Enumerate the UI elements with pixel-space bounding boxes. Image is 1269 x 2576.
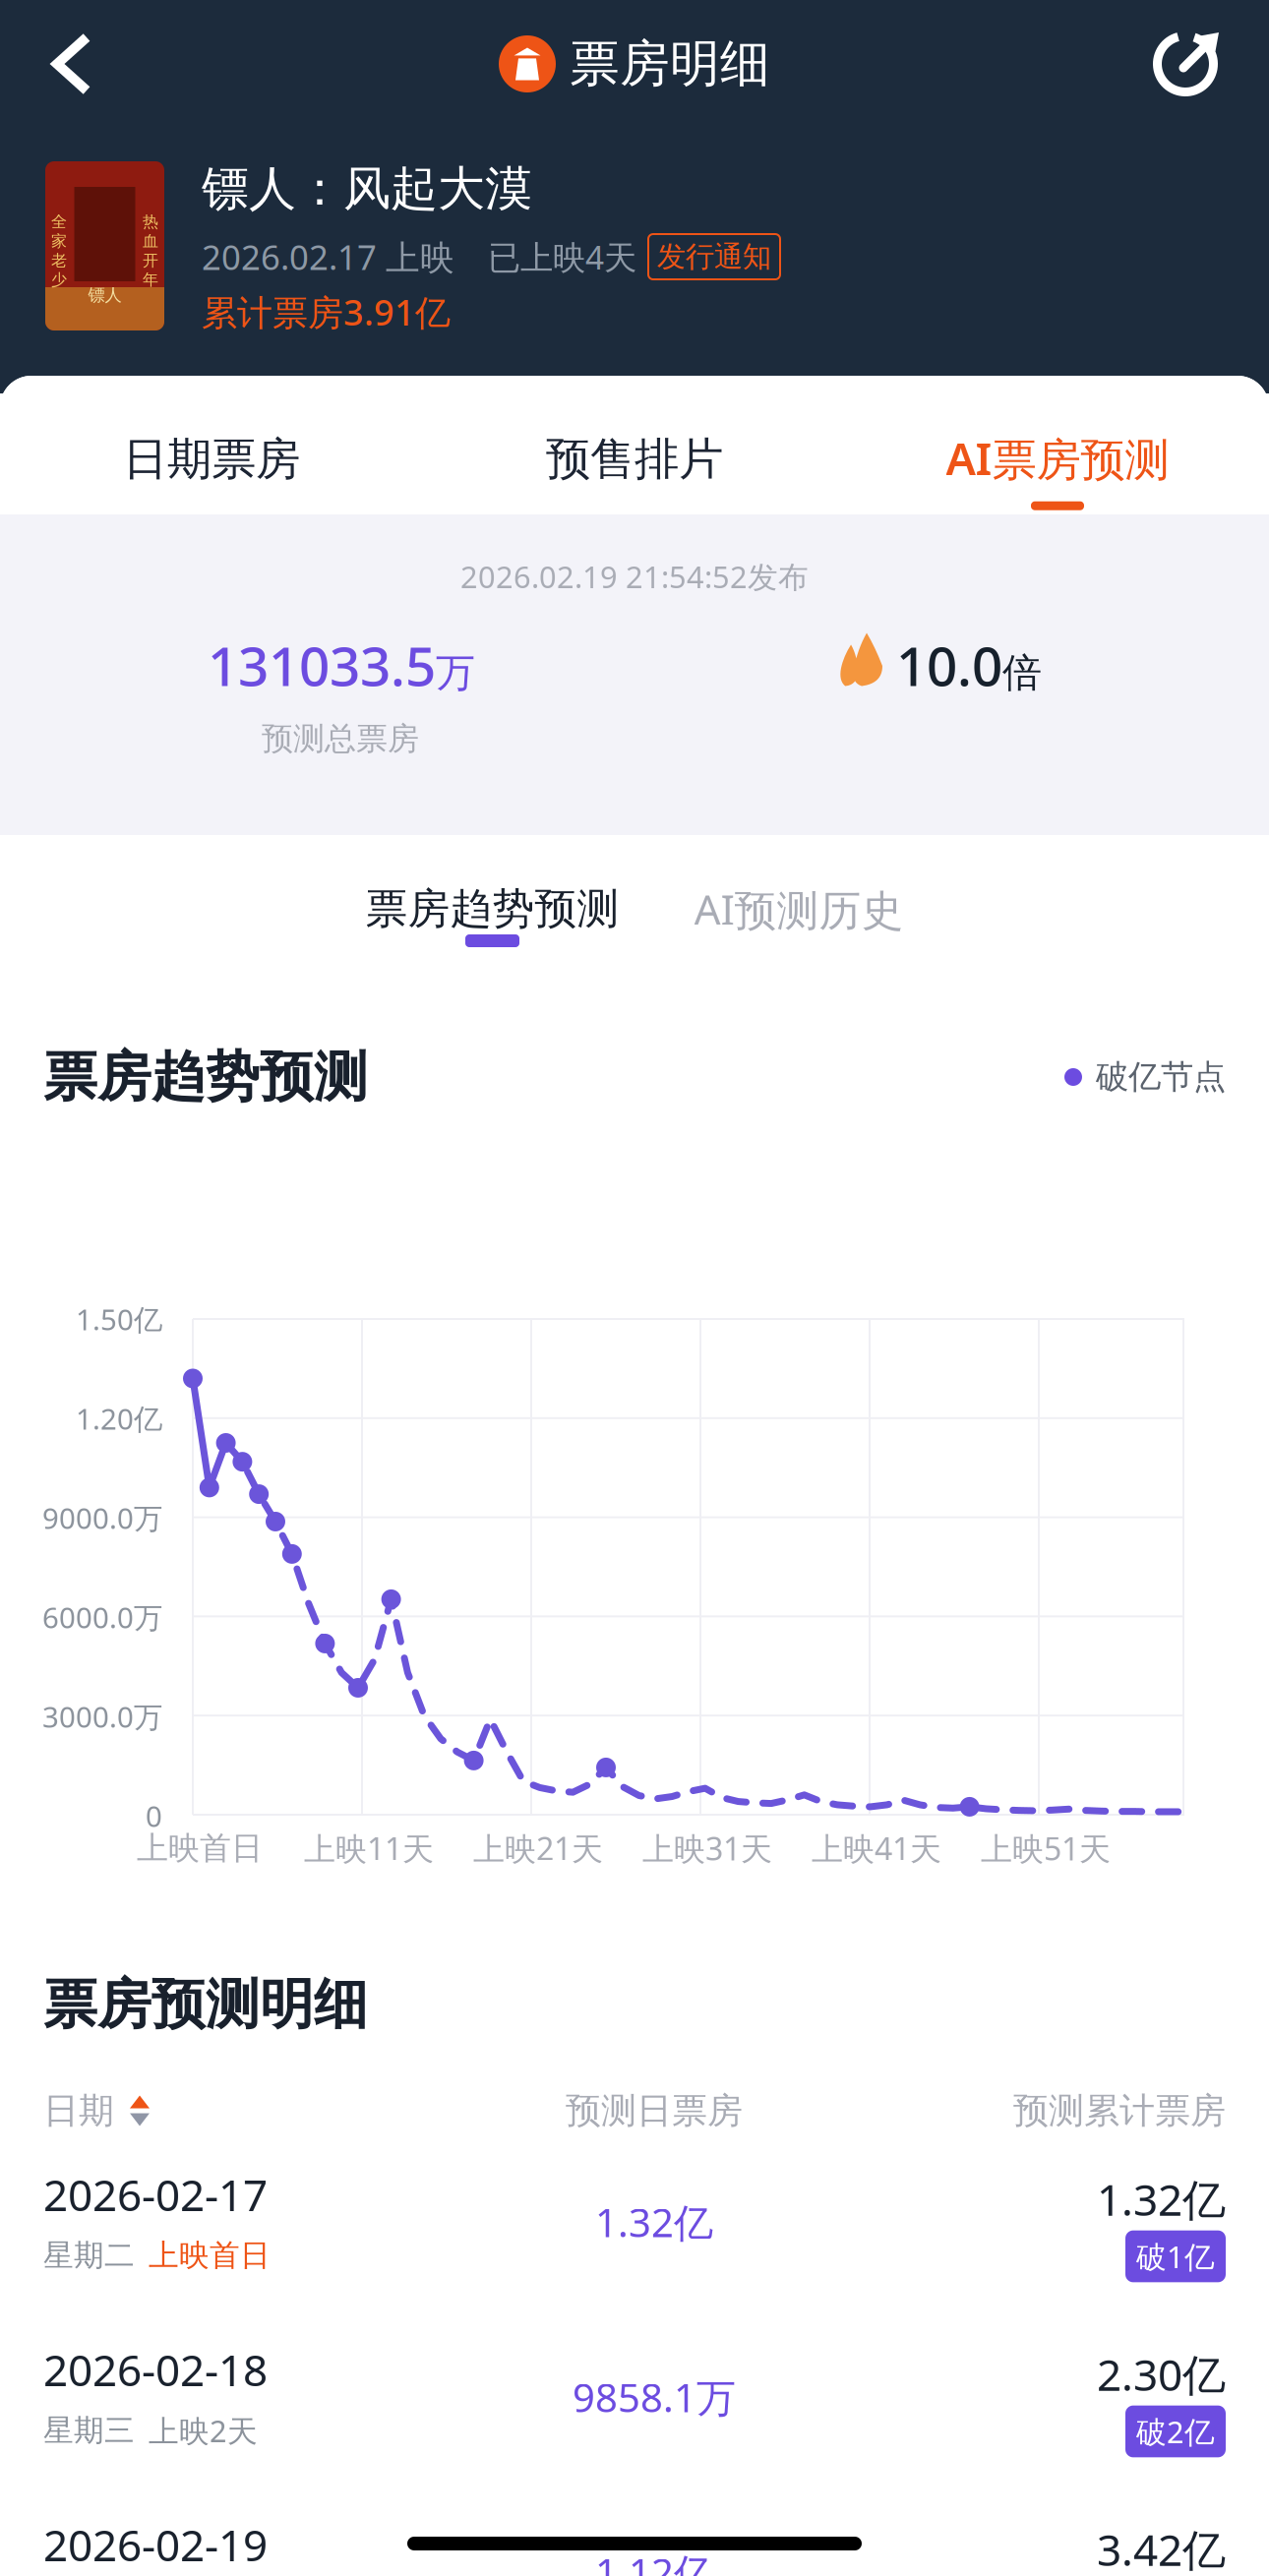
staticText: 上映首日	[149, 2237, 271, 2274]
staticText: 破2亿	[1136, 2411, 1215, 2451]
staticText: 上映2天	[149, 2410, 258, 2450]
staticText: 1.20亿	[76, 1399, 162, 1438]
staticText: 131033.5	[208, 629, 436, 701]
staticText: 2026.02.17 上映	[202, 234, 454, 279]
staticText: 镖人：风起大漠	[202, 160, 532, 218]
button[interactable]: 2026-02-18	[0, 2309, 1269, 2485]
button[interactable]: 2026-02-17	[0, 2134, 1269, 2309]
staticText: 1.32亿	[1097, 2170, 1226, 2228]
staticText: 1.32亿	[595, 2196, 713, 2248]
staticText: 上映11天	[304, 1827, 434, 1869]
staticText: 票房趋势预测	[43, 1044, 368, 1110]
staticText: 2026-02-19	[43, 2516, 268, 2573]
staticText: 星期二	[43, 2237, 135, 2274]
staticText: 预测累计票房	[1013, 2089, 1226, 2133]
button[interactable]: 预售排片	[423, 376, 846, 514]
button[interactable]: 票房趋势预测	[365, 886, 619, 947]
staticText: 倍	[1002, 649, 1042, 697]
button[interactable]: Refresh	[1119, 10, 1269, 118]
staticText: 发行通知	[657, 239, 771, 274]
staticText: 2026.02.19 21:54:52发布	[460, 556, 809, 596]
staticText: AI票房预测	[946, 428, 1169, 488]
staticText: 万	[436, 649, 475, 697]
staticText: 2026-02-18	[43, 2341, 268, 2398]
staticText: 上映41天	[812, 1827, 941, 1869]
staticText: 0	[146, 1797, 162, 1835]
staticText: 累计票房3.91亿	[202, 288, 451, 335]
staticText: 2.30亿	[1097, 2345, 1226, 2403]
staticText: 1.12亿	[595, 2546, 713, 2576]
staticText: 9000.0万	[42, 1498, 162, 1537]
staticText: 9858.1万	[573, 2371, 736, 2423]
staticText: 10.0	[896, 629, 1002, 701]
staticText: 上映51天	[981, 1827, 1111, 1869]
staticText: 上映21天	[473, 1827, 603, 1869]
staticText: 破1亿	[1136, 2236, 1215, 2276]
staticText: 破亿节点	[1096, 1057, 1226, 1097]
button[interactable]: 2026-02-19	[0, 2485, 1269, 2576]
staticText: 2026-02-17	[43, 2166, 268, 2223]
staticText: 票房明细	[570, 33, 770, 95]
staticText: 上映31天	[642, 1827, 772, 1869]
staticText: 票房趋势预测	[365, 883, 619, 935]
staticText: 3000.0万	[42, 1697, 162, 1736]
staticText: 6000.0万	[42, 1598, 162, 1636]
staticText: AI预测历史	[694, 881, 904, 937]
staticText: 3.42亿	[1097, 2520, 1226, 2576]
staticText: 预测日票房	[566, 2089, 743, 2133]
button[interactable]: AI票房预测	[846, 376, 1269, 514]
staticText: 全 家 老 少	[51, 212, 67, 289]
button[interactable]: AI预测历史	[694, 886, 904, 947]
staticText: 星期三	[43, 2412, 135, 2449]
staticText: 镖人	[88, 285, 121, 306]
staticText: 日期	[43, 2089, 114, 2133]
staticText: 上映首日	[137, 1829, 263, 1867]
staticText: 1.50亿	[76, 1300, 162, 1338]
staticText: 已上映4天	[488, 235, 636, 279]
staticText: 预售排片	[546, 432, 723, 487]
staticText: 票房预测明细	[43, 1971, 368, 2037]
staticText: 预测总票房	[262, 719, 419, 758]
button[interactable]: Back	[0, 10, 126, 118]
staticText: 热 血 开 年	[143, 212, 158, 289]
button[interactable]: 日期票房	[0, 376, 423, 514]
staticText: 日期票房	[123, 432, 300, 487]
